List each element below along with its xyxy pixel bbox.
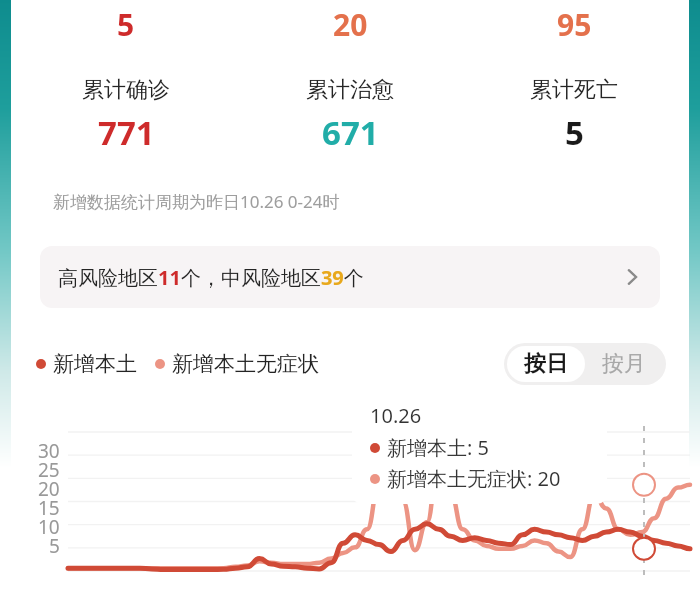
staticText: 新增本土: 5 — [387, 434, 489, 461]
staticText: 20 — [333, 4, 368, 45]
staticText: 10 — [38, 514, 60, 540]
staticText: 10.26 — [370, 402, 422, 429]
staticText: 按日 — [524, 350, 568, 378]
staticText: 新增本土无症状 — [172, 351, 319, 377]
staticText: 671 — [322, 110, 379, 155]
staticText: 5 — [117, 4, 135, 45]
staticText: 5 — [49, 533, 60, 559]
staticText: 20 — [38, 476, 60, 502]
button[interactable]: 按月 — [585, 346, 663, 382]
staticText: 5 — [565, 110, 584, 155]
staticText: 771 — [98, 110, 155, 155]
staticText: 新增本土 — [53, 351, 137, 377]
staticText: 累计治愈 — [306, 76, 394, 104]
button[interactable]: 按日 — [507, 346, 585, 382]
staticText: 新增数据统计周期为昨日10.26 0-24时 — [53, 190, 340, 213]
staticText: 新增本土无症状: 20 — [387, 465, 561, 492]
staticText: 按月 — [602, 350, 646, 378]
button[interactable]: 高风险地区11个，中风险地区39个 — [40, 246, 660, 308]
staticText: 15 — [38, 495, 60, 521]
staticText: 95 — [557, 4, 592, 45]
staticText: 25 — [38, 457, 60, 483]
staticText: 累计死亡 — [530, 76, 618, 104]
staticText: 累计确诊 — [82, 76, 170, 104]
other: 查看风险地区 — [622, 267, 642, 287]
staticText: 30 — [38, 438, 60, 464]
staticText: 高风险地区11个，中风险地区39个 — [58, 264, 364, 291]
